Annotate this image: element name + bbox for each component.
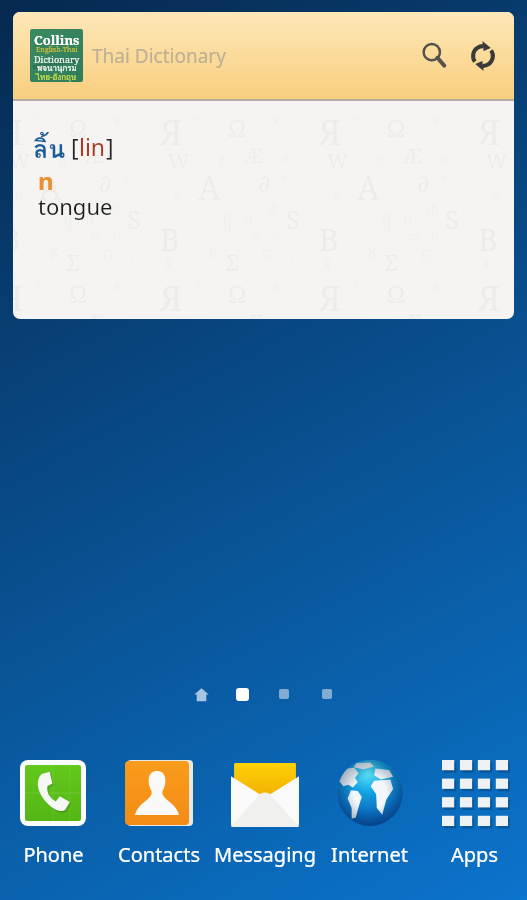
staticText: g xyxy=(59,150,67,169)
button[interactable]: Internet xyxy=(317,759,422,868)
staticText: Collins xyxy=(34,31,80,49)
staticText: ʤ xyxy=(109,201,121,217)
button[interactable]: Collins xyxy=(13,12,514,319)
staticText: B xyxy=(319,219,339,260)
button[interactable]: Apps xyxy=(422,759,527,868)
staticText: Æ xyxy=(85,142,105,169)
button[interactable]: Home screen xyxy=(190,683,212,705)
button[interactable]: Contacts xyxy=(106,759,212,868)
staticText: Internet xyxy=(331,841,408,868)
staticText: Я xyxy=(478,275,501,319)
staticText: Я xyxy=(13,109,24,155)
button[interactable]: Messaging xyxy=(212,759,317,868)
button[interactable]: Phone xyxy=(0,759,106,868)
staticText: พจนานุกรม xyxy=(37,62,77,75)
staticText: W xyxy=(13,313,30,319)
staticText: tongue xyxy=(38,191,113,221)
staticText: ลิ้น xyxy=(33,129,66,169)
staticText: B xyxy=(160,219,180,260)
staticText: Messaging xyxy=(214,841,316,868)
button[interactable]: Page 1 xyxy=(236,688,249,701)
staticText: Я xyxy=(319,109,342,155)
staticText: A xyxy=(39,166,62,210)
staticText: Я xyxy=(319,275,342,319)
button[interactable]: Page 3 xyxy=(322,689,332,699)
staticText: Я xyxy=(160,109,183,155)
staticText: [ xyxy=(71,131,79,162)
button[interactable]: Refresh xyxy=(461,34,505,78)
staticText: Phone xyxy=(23,841,84,868)
staticText: Ω xyxy=(69,111,88,144)
staticText: n xyxy=(38,164,54,197)
staticText: Apps xyxy=(451,841,498,868)
button[interactable]: Page 2 xyxy=(279,689,289,699)
staticText: Я xyxy=(160,275,183,319)
staticText: Contacts xyxy=(118,841,200,868)
button[interactable]: Search xyxy=(413,34,457,78)
staticText: English-Thai xyxy=(36,45,78,55)
staticText: Dictionary xyxy=(34,53,80,65)
staticText: lin xyxy=(79,131,106,162)
